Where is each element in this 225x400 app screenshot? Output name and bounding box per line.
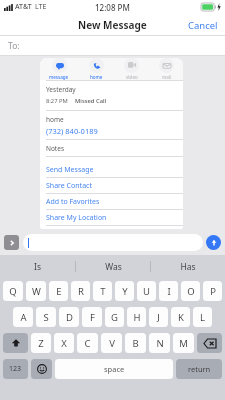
button[interactable]: home xyxy=(89,58,104,80)
staticText: Yesterday xyxy=(46,85,76,94)
staticText: Share Contact xyxy=(46,181,92,191)
button[interactable]: G xyxy=(105,307,124,327)
button[interactable]: S xyxy=(36,307,56,327)
button[interactable]: V xyxy=(101,333,122,353)
button[interactable]: T xyxy=(93,281,112,301)
staticText: Send Message xyxy=(46,165,94,175)
staticText: C xyxy=(84,337,91,350)
staticText: Was xyxy=(105,261,122,273)
button[interactable]: Is xyxy=(0,255,75,278)
staticText: video xyxy=(126,74,138,80)
button[interactable]: return xyxy=(176,359,222,379)
staticText: Q xyxy=(9,285,17,298)
button[interactable]: Backspace xyxy=(197,333,222,353)
button[interactable]: A xyxy=(13,307,33,327)
staticText: N xyxy=(156,337,164,350)
staticText: Y xyxy=(122,285,128,298)
staticText: P xyxy=(210,285,216,298)
staticText: (732) 840-0189 xyxy=(46,126,98,136)
staticText: L xyxy=(200,311,205,324)
button[interactable]: Has xyxy=(151,255,225,278)
button[interactable]: Send xyxy=(206,235,221,250)
button[interactable]: H xyxy=(127,307,146,327)
button[interactable]: Cancel xyxy=(181,15,225,36)
button[interactable]: N xyxy=(149,333,170,353)
button[interactable]: mail xyxy=(159,58,174,80)
staticText: 123 xyxy=(9,364,22,374)
staticText: G xyxy=(111,311,118,324)
button[interactable]: P xyxy=(203,281,222,301)
staticText: A xyxy=(20,311,27,324)
staticText: Cancel xyxy=(188,19,218,32)
staticText: H xyxy=(133,311,141,324)
staticText: Is xyxy=(34,261,41,273)
button[interactable]: Was xyxy=(76,255,150,278)
button[interactable]: home xyxy=(40,111,183,139)
button[interactable]: Notes xyxy=(40,140,183,156)
button[interactable]: D xyxy=(59,307,79,327)
staticText: I xyxy=(167,285,171,298)
button[interactable]: K xyxy=(171,307,190,327)
staticText: space xyxy=(104,364,125,374)
staticText: S xyxy=(43,311,49,324)
staticText: J xyxy=(157,311,160,324)
staticText: Notes xyxy=(46,144,64,153)
button[interactable]: U xyxy=(137,281,156,301)
staticText: return xyxy=(188,364,211,374)
button[interactable]: W xyxy=(26,281,46,301)
staticText: M xyxy=(179,337,188,350)
button[interactable]: O xyxy=(181,281,200,301)
button[interactable]: message xyxy=(49,58,69,80)
button[interactable]: J xyxy=(149,307,168,327)
button[interactable]: I xyxy=(159,281,178,301)
button[interactable]: Emoji xyxy=(31,359,52,379)
button[interactable] xyxy=(23,234,203,251)
button[interactable]: Expand app drawer xyxy=(4,235,19,250)
button[interactable]: Share My Location xyxy=(40,210,183,225)
button[interactable]: Share Contact xyxy=(40,178,183,193)
button[interactable]: video xyxy=(124,58,139,80)
button[interactable]: R xyxy=(71,281,90,301)
staticText: Share My Location xyxy=(46,213,107,223)
button[interactable]: E xyxy=(49,281,68,301)
staticText: home xyxy=(90,74,103,80)
button[interactable]: C xyxy=(77,333,98,353)
staticText: New Message xyxy=(78,18,147,32)
staticText: Has xyxy=(180,261,196,273)
button[interactable]: Send Message xyxy=(40,162,183,177)
button[interactable]: space xyxy=(55,359,173,379)
staticText: To: xyxy=(8,40,20,52)
button[interactable]: B xyxy=(125,333,146,353)
staticText: mail xyxy=(162,74,172,80)
button[interactable]: L xyxy=(193,307,212,327)
button[interactable]: Q xyxy=(3,281,23,301)
staticText: 8:27 PM xyxy=(46,97,68,105)
staticText: W xyxy=(32,285,41,298)
staticText: U xyxy=(143,285,150,298)
button[interactable]: To: xyxy=(0,36,225,56)
staticText: 12:08 PM xyxy=(95,2,130,13)
staticText: K xyxy=(178,311,184,324)
button[interactable]: F xyxy=(82,307,102,327)
button[interactable]: M xyxy=(173,333,194,353)
staticText: F xyxy=(90,311,95,324)
staticText: V xyxy=(109,337,115,350)
button[interactable]: 123 xyxy=(3,359,28,379)
button[interactable]: Add to Favorites xyxy=(40,194,183,209)
button[interactable]: X xyxy=(54,333,74,353)
staticText: Add to Favorites xyxy=(46,197,100,207)
staticText: D xyxy=(66,311,73,324)
staticText: B xyxy=(132,337,139,350)
staticText: Z xyxy=(38,337,44,350)
staticText: message xyxy=(49,74,69,80)
button[interactable]: Shift xyxy=(3,333,28,353)
staticText: home xyxy=(46,115,64,124)
staticText: T xyxy=(100,285,106,298)
staticText: X xyxy=(61,337,67,350)
staticText: E xyxy=(56,285,62,298)
staticText: AT&T xyxy=(15,2,32,12)
staticText: Missed Call xyxy=(75,97,107,105)
button[interactable]: Y xyxy=(115,281,134,301)
button[interactable]: Z xyxy=(31,333,51,353)
staticText: LTE xyxy=(35,2,47,12)
